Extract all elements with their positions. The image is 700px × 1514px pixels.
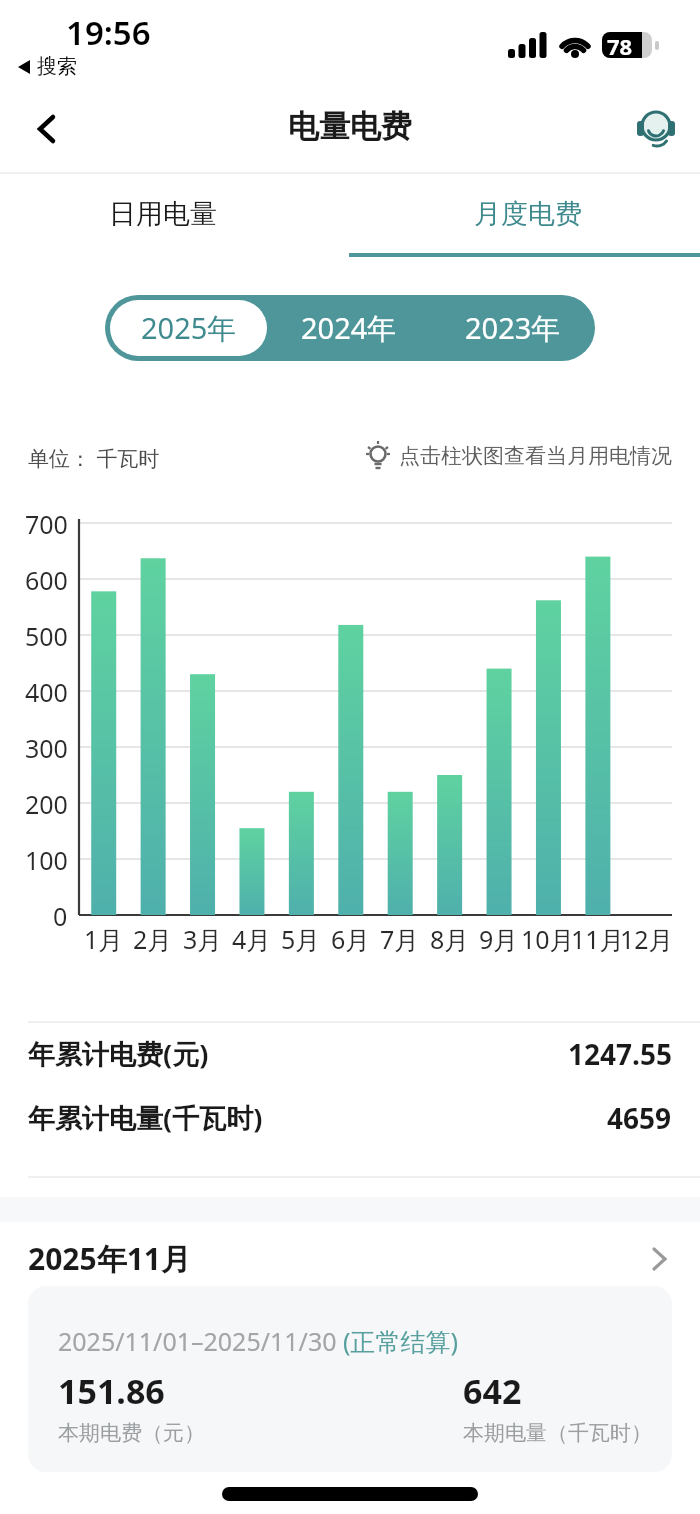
staticText: 19:56 bbox=[66, 10, 151, 55]
staticText: 10月 bbox=[521, 922, 575, 956]
staticText: 300 bbox=[25, 731, 68, 763]
staticText: 200 bbox=[25, 787, 68, 819]
button[interactable]: 2025年11月 bbox=[28, 1238, 672, 1279]
staticText: 2025年11月 bbox=[28, 1238, 191, 1279]
button[interactable]: 2024年 bbox=[267, 295, 431, 361]
staticText: 5月 bbox=[281, 922, 321, 956]
staticText: 78 bbox=[607, 31, 633, 61]
staticText: 400 bbox=[25, 675, 68, 707]
staticText: 642 bbox=[463, 1368, 522, 1414]
staticText: 11月 bbox=[571, 922, 625, 956]
staticText: 月度电费 bbox=[474, 197, 582, 231]
staticText: 2024年 bbox=[301, 308, 397, 348]
button[interactable]: 2月 bbox=[118, 922, 188, 956]
button[interactable]: 4月 bbox=[217, 922, 287, 956]
button[interactable]: 9月 bbox=[464, 922, 534, 956]
staticText: 3月 bbox=[183, 922, 223, 956]
button[interactable]: 8月 bbox=[415, 922, 485, 956]
button[interactable]: 11月 bbox=[563, 922, 633, 956]
button[interactable]: 12月 bbox=[612, 922, 682, 956]
staticText: 1247.55 bbox=[568, 1035, 672, 1073]
staticText: 8月 bbox=[430, 922, 470, 956]
button[interactable] bbox=[632, 104, 680, 152]
button[interactable]: 10月 bbox=[513, 922, 583, 956]
button[interactable]: 2025年 bbox=[110, 300, 267, 356]
staticText: 700 bbox=[25, 507, 68, 539]
staticText: 年累计电量(千瓦时) bbox=[28, 1099, 263, 1136]
staticText: 0 bbox=[53, 899, 68, 931]
staticText: 600 bbox=[25, 563, 68, 595]
staticText: 100 bbox=[25, 843, 68, 875]
staticText: 本期电费（元） bbox=[58, 1420, 205, 1446]
staticText: 151.86 bbox=[58, 1368, 165, 1414]
staticText: 电量电费 bbox=[288, 107, 412, 146]
staticText: 4月 bbox=[232, 922, 272, 956]
staticText: 2025年 bbox=[141, 308, 237, 348]
staticText: 搜索 bbox=[37, 54, 77, 79]
button[interactable]: 搜索 bbox=[16, 54, 77, 79]
button[interactable]: 3月 bbox=[168, 922, 238, 956]
staticText: 2025/11/01–2025/11/30 (正常结算) bbox=[58, 1324, 459, 1358]
staticText: 9月 bbox=[479, 922, 519, 956]
staticText: 12月 bbox=[620, 922, 674, 956]
button[interactable]: 1月 bbox=[69, 922, 139, 956]
staticText: 年累计电费(元) bbox=[28, 1035, 209, 1072]
staticText: 6月 bbox=[331, 922, 371, 956]
button[interactable]: 7月 bbox=[365, 922, 435, 956]
staticText: 2023年 bbox=[465, 308, 561, 348]
staticText: 7月 bbox=[380, 922, 420, 956]
staticText: 500 bbox=[25, 619, 68, 651]
button[interactable]: 6月 bbox=[316, 922, 386, 956]
staticText: 4659 bbox=[607, 1099, 672, 1137]
button[interactable]: 2023年 bbox=[431, 295, 595, 361]
staticText: 点击柱状图查看当月用电情况 bbox=[399, 443, 672, 469]
staticText: 单位： 千瓦时 bbox=[28, 444, 160, 473]
button[interactable]: 2025/11/01–2025/11/30 (正常结算) bbox=[28, 1286, 672, 1472]
button[interactable]: 日用电量 bbox=[0, 178, 338, 250]
button[interactable]: 5月 bbox=[266, 922, 336, 956]
staticText: 2月 bbox=[133, 922, 173, 956]
button[interactable]: 月度电费 bbox=[353, 178, 700, 250]
staticText: 日用电量 bbox=[109, 197, 217, 231]
button[interactable] bbox=[28, 108, 72, 152]
staticText: 1月 bbox=[84, 922, 124, 956]
staticText: 本期电量（千瓦时） bbox=[463, 1420, 652, 1446]
